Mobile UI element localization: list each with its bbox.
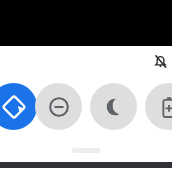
button[interactable]: Battery saver [145,83,172,130]
button[interactable]: Auto rotate [0,83,37,130]
button[interactable]: Do not disturb [35,83,82,130]
button[interactable]: Bedtime mode [90,83,137,130]
button[interactable]: Notifications off [150,51,170,71]
